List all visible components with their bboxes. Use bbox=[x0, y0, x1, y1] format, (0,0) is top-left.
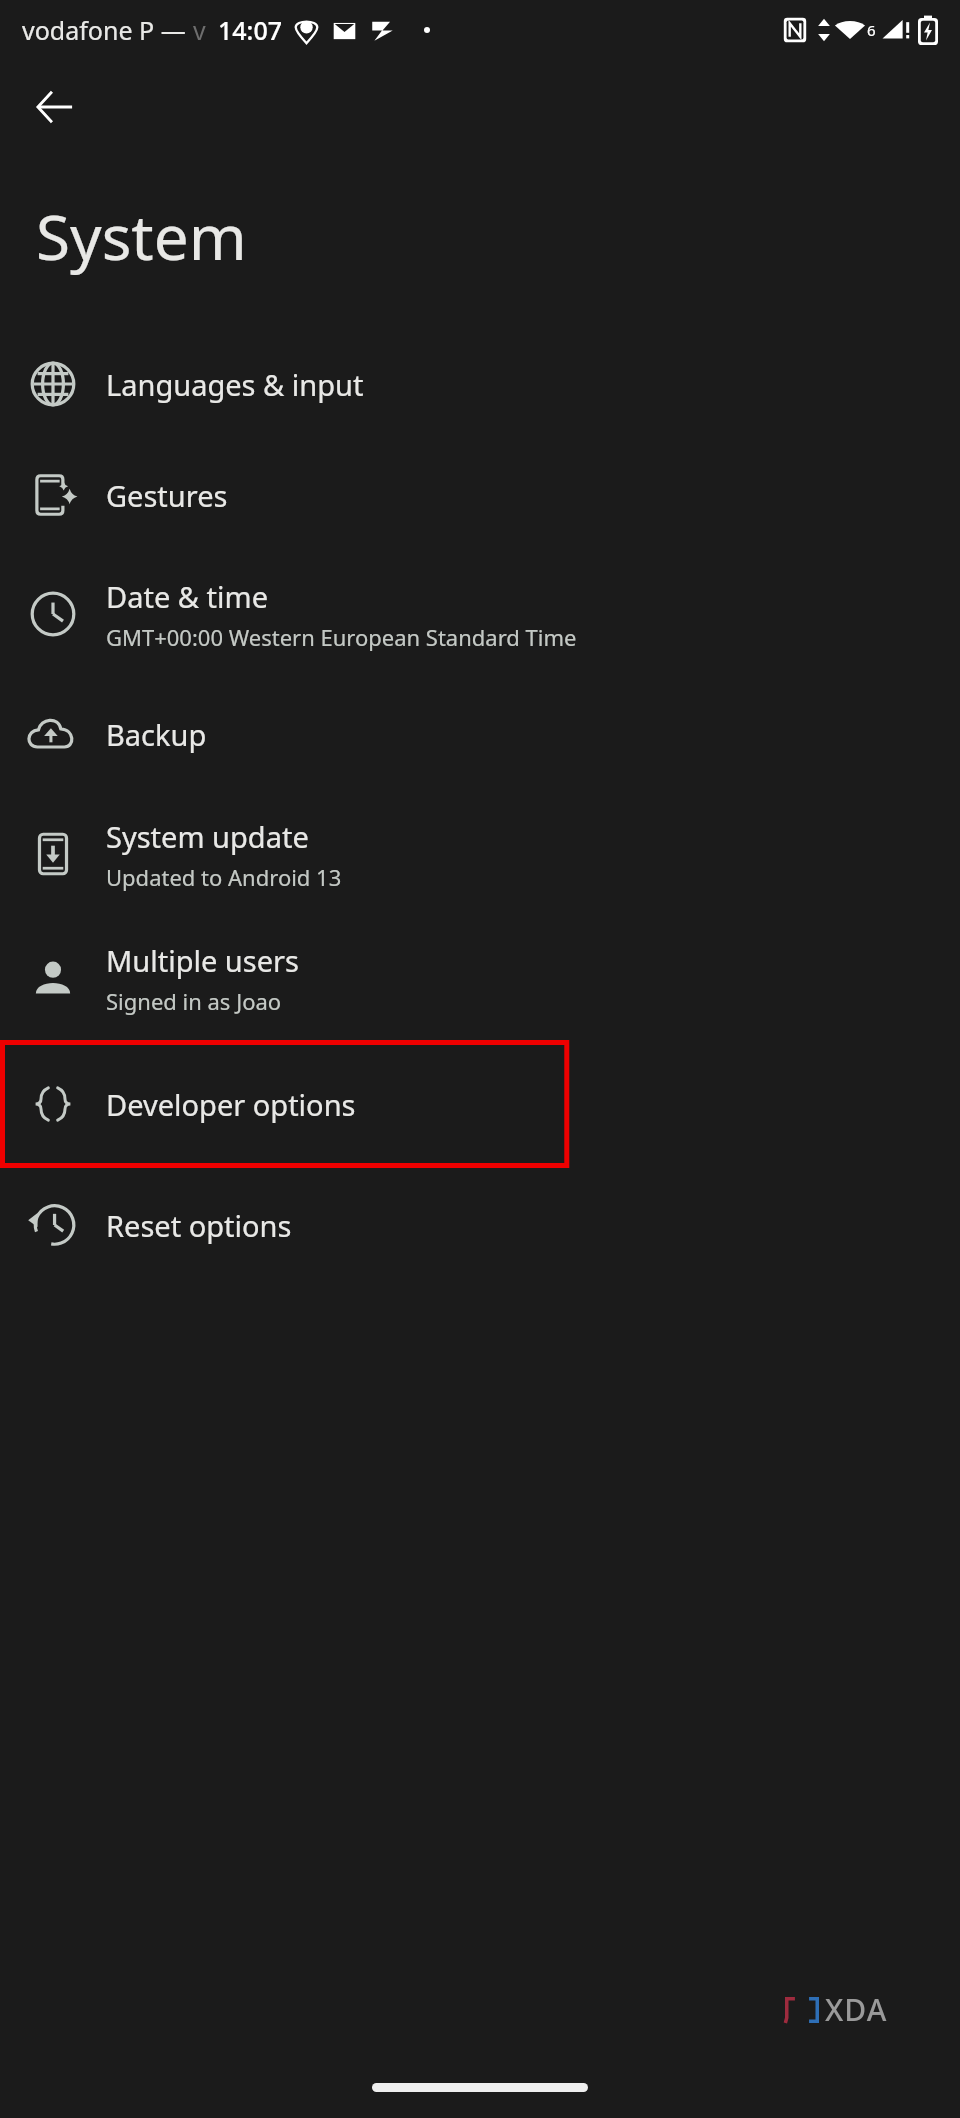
staticText: Signed in as Joao bbox=[106, 986, 282, 1016]
staticText: vodafone P — bbox=[22, 13, 193, 47]
staticText: 14:07 bbox=[218, 13, 283, 47]
staticText: Multiple users bbox=[106, 941, 299, 980]
staticText: Updated to Android 13 bbox=[106, 862, 342, 892]
button[interactable]: Multiple users bbox=[0, 916, 960, 1040]
button[interactable]: Back bbox=[22, 74, 88, 140]
staticText: v bbox=[193, 13, 206, 47]
staticText: Date & time bbox=[106, 577, 268, 616]
staticText: GMT+00:00 Western European Standard Time bbox=[106, 622, 577, 652]
staticText: Gestures bbox=[106, 476, 228, 515]
staticText: Reset options bbox=[106, 1206, 292, 1245]
button[interactable]: Reset options bbox=[0, 1168, 960, 1282]
button[interactable]: Date & time bbox=[0, 552, 960, 676]
staticText: System update bbox=[106, 817, 309, 856]
button[interactable]: Gestures bbox=[0, 438, 960, 552]
button[interactable]: Developer options bbox=[0, 1040, 960, 1168]
staticText: System bbox=[36, 194, 247, 278]
staticText: Languages & input bbox=[106, 365, 364, 404]
button[interactable]: Backup bbox=[0, 676, 960, 792]
button[interactable]: Languages & input bbox=[0, 330, 960, 438]
staticText: XDA bbox=[825, 1989, 888, 2030]
staticText: Backup bbox=[106, 715, 207, 754]
button[interactable]: System update bbox=[0, 792, 960, 916]
staticText: 6 bbox=[867, 20, 876, 40]
staticText: Developer options bbox=[106, 1085, 356, 1124]
